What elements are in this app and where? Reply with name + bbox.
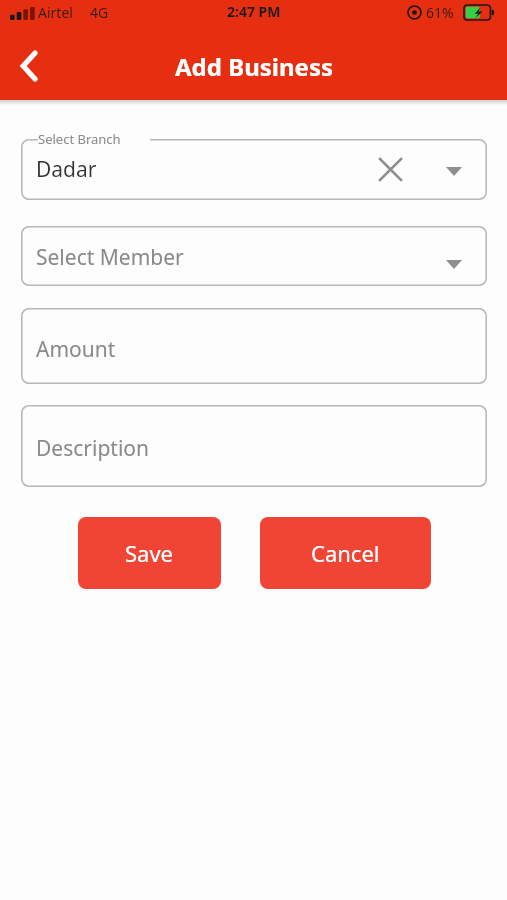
button[interactable]: Open dropdown	[436, 153, 472, 189]
staticText: Save	[125, 538, 174, 568]
staticText: Select Branch	[38, 130, 121, 148]
staticText: Select Member	[36, 243, 184, 272]
staticText: Amount	[36, 335, 116, 364]
button[interactable]: Save	[78, 517, 221, 589]
staticText: Description	[36, 434, 150, 463]
staticText: 2:47 PM	[227, 2, 281, 21]
staticText: Add Business	[175, 50, 333, 83]
button[interactable]: Clear	[370, 149, 410, 189]
button[interactable]: Cancel	[260, 517, 431, 589]
button[interactable]: Back	[8, 44, 52, 88]
staticText: Airtel	[38, 3, 73, 22]
staticText: Cancel	[311, 538, 380, 568]
staticText: 4G	[90, 3, 109, 22]
button[interactable]: Open dropdown	[436, 246, 472, 282]
staticText: 61%	[426, 3, 454, 22]
staticText: Dadar	[36, 155, 97, 184]
